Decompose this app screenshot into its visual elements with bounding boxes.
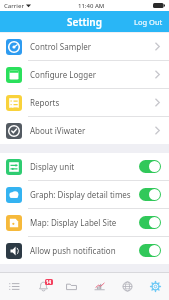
staticText: Display unit	[30, 161, 75, 172]
button[interactable]: Toggle Map: Display Label Site	[139, 216, 161, 229]
button[interactable]: Configure Logger	[0, 61, 169, 88]
button[interactable]: Toggle Allow push notification	[139, 244, 161, 257]
button[interactable]: Alerts	[29, 273, 57, 300]
button[interactable]: Folders	[57, 273, 85, 300]
staticText: Reports	[30, 97, 60, 108]
staticText: About iViwater	[30, 125, 86, 136]
staticText: 14	[46, 279, 52, 285]
staticText: Configure Logger	[30, 69, 96, 80]
staticText: Log Out	[134, 17, 163, 27]
button[interactable]: Control Sampler	[0, 33, 169, 60]
button[interactable]: Charts	[85, 273, 113, 300]
button[interactable]: Graph: Display detail times	[0, 181, 169, 208]
staticText: Setting	[67, 15, 102, 29]
button[interactable]: Display unit	[0, 153, 169, 180]
staticText: Map: Display Label Site	[30, 217, 117, 228]
staticText: Control Sampler	[30, 41, 92, 52]
button[interactable]: Web	[113, 273, 141, 300]
staticText: Allow push notification	[30, 245, 116, 256]
button[interactable]: List	[0, 273, 29, 300]
button[interactable]: Map: Display Label Site	[0, 209, 169, 236]
button[interactable]: About iViwater	[0, 117, 169, 144]
button[interactable]: Settings	[141, 273, 169, 300]
staticText: Carrier	[4, 2, 24, 10]
button[interactable]: Toggle Graph: Display detail times	[139, 188, 161, 201]
button[interactable]: Toggle Display unit	[139, 160, 161, 173]
button[interactable]: Allow push notification	[0, 237, 169, 264]
staticText: 11:40 AM	[78, 2, 105, 10]
staticText: Graph: Display detail times	[30, 189, 131, 200]
button[interactable]: Log Out	[128, 13, 169, 31]
button[interactable]: Reports	[0, 89, 169, 116]
